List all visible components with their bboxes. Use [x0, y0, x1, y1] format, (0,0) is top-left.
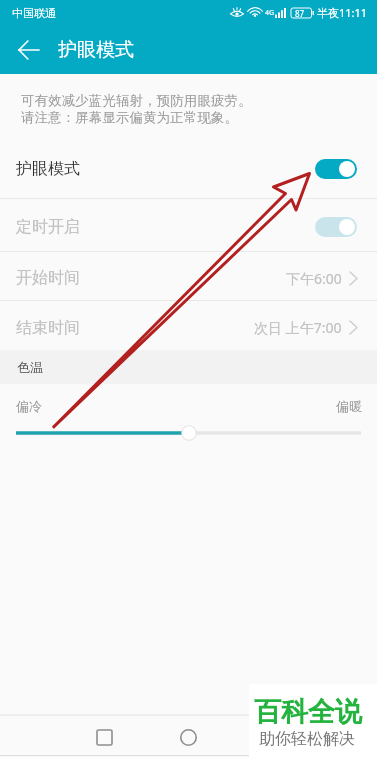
button[interactable]: Color temperature slider: [0, 419, 377, 447]
button[interactable]: 护眼模式: [0, 145, 377, 198]
staticText: 4G: [265, 8, 275, 18]
staticText: 中国联通: [12, 6, 56, 20]
staticText: 护眼模式: [58, 38, 134, 62]
staticText: 可有效减少蓝光辐射，预防用眼疲劳。: [21, 92, 252, 109]
staticText: 偏冷: [16, 398, 42, 414]
staticText: 色温: [17, 359, 43, 375]
staticText: 87: [295, 8, 305, 18]
staticText: 定时开启: [16, 217, 80, 237]
staticText: 半夜11:11: [317, 5, 368, 20]
staticText: 次日 上午7:00: [254, 318, 342, 337]
staticText: 偏暖: [336, 398, 362, 414]
staticText: 助你轻松解决: [259, 729, 355, 749]
staticText: 请注意：屏幕显示偏黄为正常现象。: [21, 109, 239, 126]
staticText: 护眼模式: [16, 159, 80, 179]
button[interactable]: Recent apps: [72, 716, 136, 758]
staticText: 开始时间: [16, 268, 80, 288]
staticText: 百科全说: [254, 695, 362, 729]
button[interactable]: 结束时间: [0, 301, 377, 350]
button[interactable]: Back: [6, 28, 50, 72]
button[interactable]: Home: [156, 716, 220, 758]
staticText: 结束时间: [16, 318, 80, 338]
button[interactable]: 定时开启: [0, 199, 377, 251]
staticText: 下午6:00: [286, 269, 342, 288]
button[interactable]: 开始时间: [0, 252, 377, 300]
